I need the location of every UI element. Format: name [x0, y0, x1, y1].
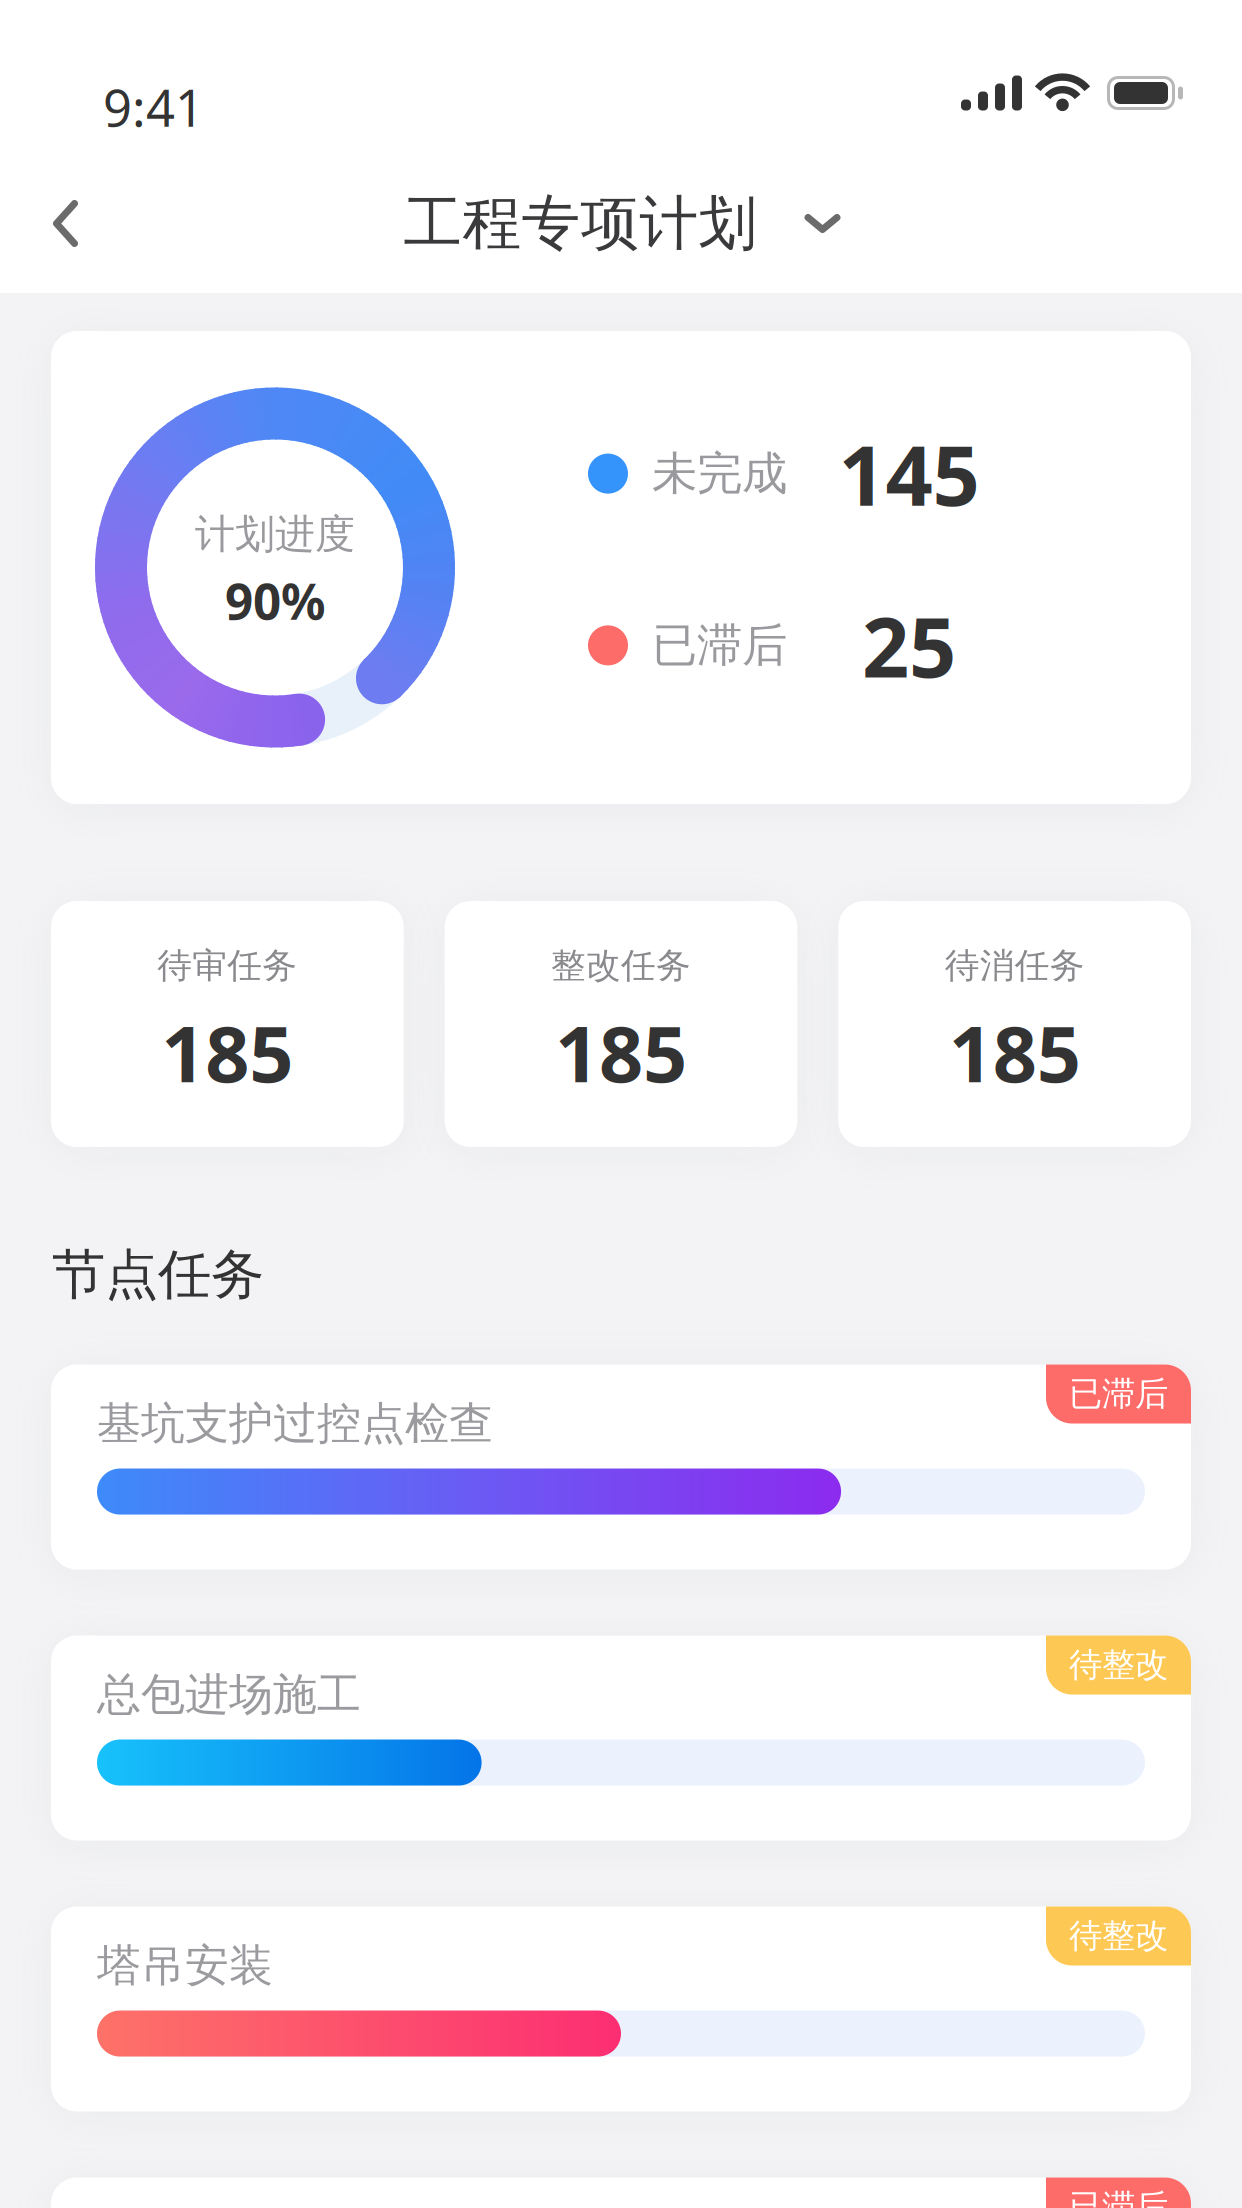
staticText: 待整改	[1069, 1915, 1168, 1956]
button[interactable]: 塔吊安装	[51, 1906, 1191, 2111]
staticText: 计划进度	[195, 510, 355, 559]
button[interactable]: 总包进场施工	[51, 1635, 1191, 1840]
staticText: 待审任务	[157, 944, 297, 987]
staticText: 未完成	[652, 446, 787, 501]
staticText: 25	[862, 590, 956, 700]
button[interactable]: Back	[0, 174, 116, 273]
button[interactable]: 工程专项计划	[403, 175, 840, 272]
button[interactable]: 基坑支护过控点检查	[51, 1364, 1191, 1569]
staticText: 待整改	[1069, 1644, 1168, 1685]
staticText: 塔吊安装	[97, 1938, 273, 1992]
staticText: 已滞后	[1069, 1373, 1168, 1414]
button[interactable]: 待消任务	[838, 901, 1191, 1147]
staticText: 总包进场施工	[97, 1667, 361, 1721]
staticText: 待消任务	[945, 944, 1085, 987]
staticText: 基坑支护过控点检查	[97, 1396, 493, 1450]
staticText: 节点任务	[52, 1242, 264, 1307]
staticText: 工程专项计划	[403, 187, 757, 260]
button[interactable]: 待审任务	[51, 901, 404, 1147]
button[interactable]: 主体结构施工	[51, 2177, 1191, 2208]
staticText: 已滞后	[1069, 2186, 1168, 2208]
staticText: 整改任务	[551, 944, 691, 987]
staticText: 已滞后	[652, 617, 787, 673]
staticText: 9:41	[103, 73, 204, 141]
button[interactable]: 整改任务	[445, 901, 797, 1147]
staticText: 145	[838, 419, 979, 528]
staticText: 185	[161, 1001, 293, 1104]
staticText: 185	[555, 1001, 687, 1104]
staticText: 90%	[225, 568, 325, 633]
staticText: 185	[949, 1001, 1081, 1104]
